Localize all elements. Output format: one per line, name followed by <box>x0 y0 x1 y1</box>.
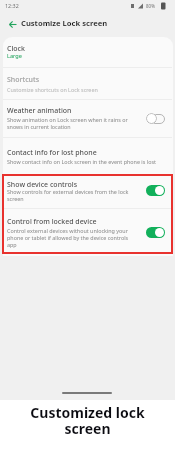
button[interactable] <box>9 21 17 28</box>
staticText: Show animation on Lock screen when it ra… <box>7 116 128 123</box>
button[interactable]: Weather animation <box>0 100 175 137</box>
staticText: Show device controls <box>7 180 78 190</box>
button[interactable] <box>146 227 165 238</box>
staticText: Show contact info on Lock screen in the … <box>7 158 156 165</box>
staticText: Weather animation <box>7 106 72 116</box>
button[interactable]: Clock <box>0 38 175 67</box>
staticText: screen <box>7 195 24 202</box>
staticText: phone or tablet if allowed by the device… <box>7 234 129 241</box>
button[interactable]: Shortcuts <box>0 68 175 99</box>
staticText: Customize Lock screen <box>21 18 108 28</box>
staticText: screen <box>64 419 111 438</box>
staticText: Show controls for external devices from … <box>7 188 129 195</box>
staticText: snows in current location <box>7 123 71 130</box>
staticText: 80% <box>146 3 155 9</box>
button[interactable] <box>146 113 165 124</box>
staticText: Customize shortcuts on Lock screen <box>7 86 98 93</box>
button[interactable]: Control from locked device <box>0 209 175 254</box>
button[interactable]: Show device controls <box>0 175 175 208</box>
staticText: Control external devices without unlocki… <box>7 227 128 234</box>
staticText: Shortcuts <box>7 75 40 85</box>
staticText: Customized lock <box>30 403 145 422</box>
staticText: Large <box>7 52 22 60</box>
button[interactable]: Contact info for lost phone <box>0 138 175 174</box>
staticText: Clock <box>7 44 25 54</box>
staticText: 12:32 <box>5 2 19 9</box>
staticText: Control from locked device <box>7 217 97 227</box>
staticText: Contact info for lost phone <box>7 148 97 158</box>
staticText: app <box>7 241 17 248</box>
button[interactable] <box>146 185 165 196</box>
